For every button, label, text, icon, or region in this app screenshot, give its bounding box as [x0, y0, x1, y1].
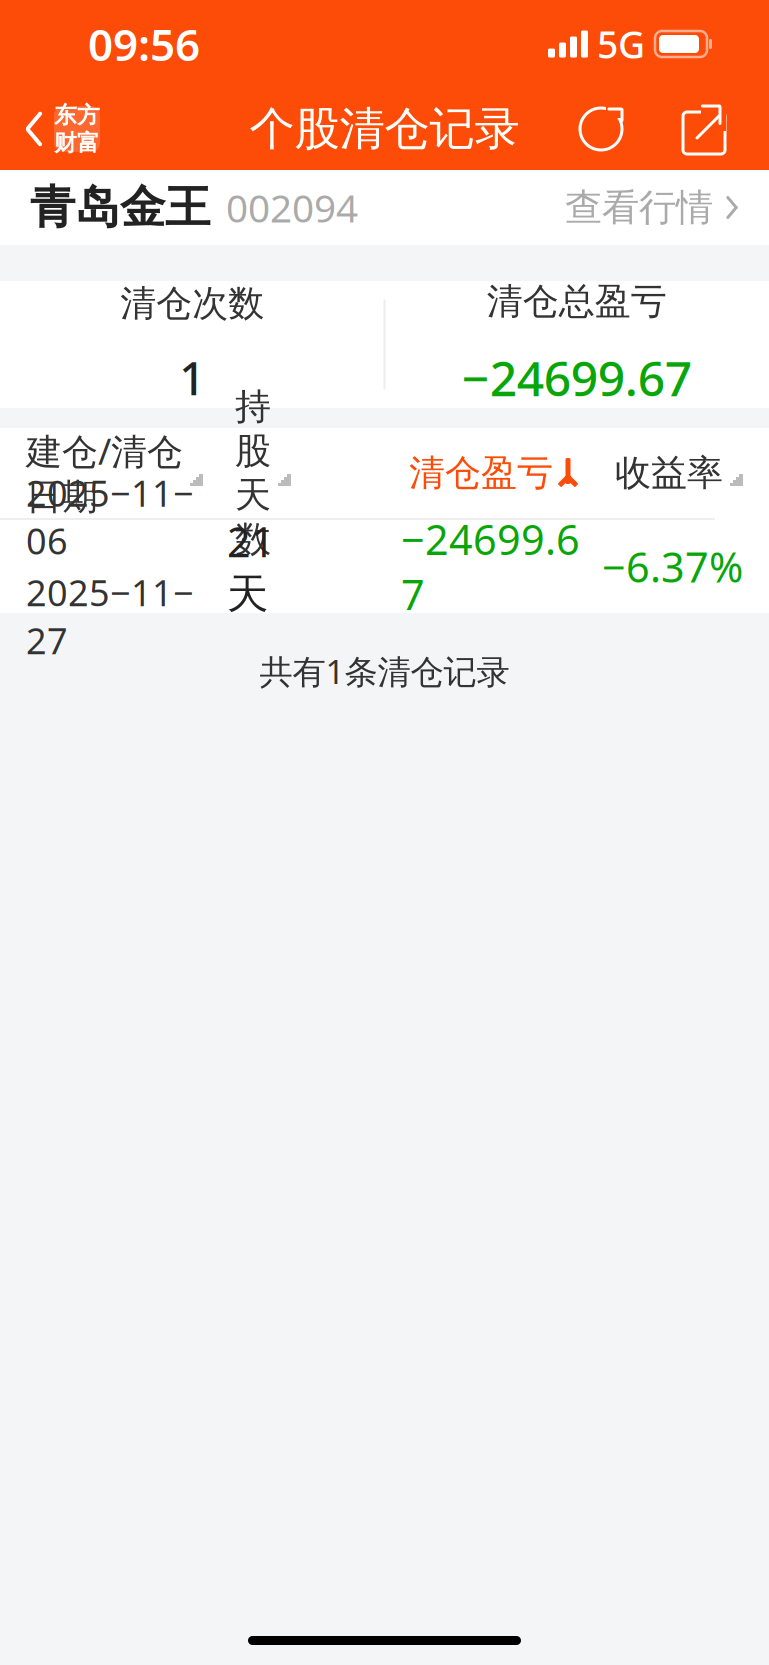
button[interactable]: 返回东方财富	[0, 96, 100, 162]
staticText: 21天	[227, 514, 275, 619]
staticText: 清仓次数	[120, 281, 264, 325]
button[interactable]: 刷新	[567, 97, 635, 161]
staticText: 持股天数	[235, 385, 271, 561]
button[interactable]: 查看行情	[565, 173, 739, 242]
staticText: 共有1条清仓记录	[259, 649, 509, 693]
staticText: 收益率	[615, 451, 723, 495]
button[interactable]: 持股天数	[235, 375, 291, 571]
staticText: 1	[179, 347, 205, 408]
staticText: 清仓总盈亏	[487, 279, 667, 324]
staticText: 东方	[54, 101, 100, 129]
staticText: 建仓/清仓日期	[26, 427, 183, 519]
staticText: 2025−11−06	[26, 469, 194, 564]
button[interactable]: 收益率	[615, 441, 743, 505]
staticText: −6.37%	[602, 539, 743, 594]
staticText: 清仓盈亏	[409, 451, 553, 495]
button[interactable]: 建仓/清仓日期	[26, 417, 203, 529]
button[interactable]: 分享	[669, 96, 739, 162]
staticText: 个股清仓记录	[249, 101, 519, 157]
staticText: 查看行情	[565, 185, 713, 230]
staticText: 09:56	[88, 15, 200, 73]
button[interactable]: 清仓盈亏	[409, 441, 579, 505]
button[interactable]: 2025−11−06	[0, 520, 769, 613]
staticText: 财富	[54, 129, 100, 157]
staticText: 002094	[226, 182, 358, 233]
staticText: 5G	[597, 19, 645, 69]
staticText: 青岛金王	[30, 180, 210, 235]
staticText: −24699.67	[401, 512, 580, 621]
staticText: −24699.67	[462, 346, 692, 409]
staticText: 2025−11−27	[26, 568, 194, 664]
